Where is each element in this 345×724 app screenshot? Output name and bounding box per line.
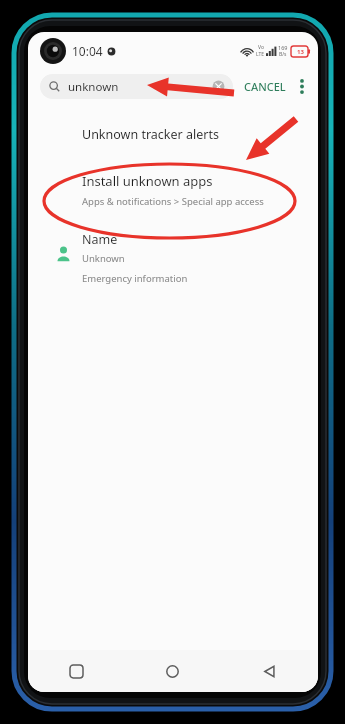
button[interactable]: CANCEL — [242, 76, 288, 97]
staticText: Unknown tracker alerts — [82, 126, 219, 143]
button[interactable]: Install unknown apps — [28, 170, 318, 214]
staticText: 169 — [278, 44, 288, 51]
staticText: 13 — [297, 48, 304, 56]
button[interactable]: Recent apps — [28, 650, 124, 692]
staticText: Vo — [258, 44, 264, 51]
button[interactable]: unknown — [40, 74, 233, 99]
button[interactable]: Unknown tracker alerts — [28, 112, 318, 156]
staticText: 10:04 — [72, 43, 103, 59]
staticText: Install unknown apps — [82, 172, 213, 190]
button[interactable]: Back — [221, 650, 318, 692]
button[interactable]: More options — [294, 74, 310, 98]
staticText: B/s — [279, 51, 287, 58]
staticText: Emergency information — [82, 272, 188, 285]
staticText: CANCEL — [244, 79, 286, 94]
staticText: Apps & notifications > Special app acces… — [82, 195, 264, 208]
button[interactable]: Home — [124, 650, 221, 692]
staticText: unknown — [68, 79, 119, 95]
button[interactable]: Name — [28, 230, 318, 293]
button[interactable]: Clear search — [212, 80, 225, 93]
staticText: Unknown — [82, 252, 125, 265]
staticText: LTE — [256, 51, 265, 58]
staticText: Name — [82, 231, 118, 248]
